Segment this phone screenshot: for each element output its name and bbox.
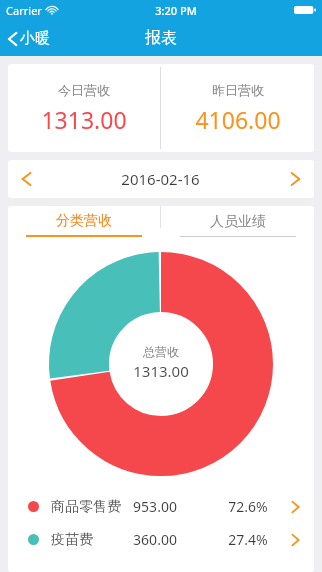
button[interactable]: 小暖 [0, 25, 60, 52]
button[interactable]: 昨日营收 [161, 64, 314, 152]
button[interactable]: 分类营收 [8, 206, 160, 240]
staticText: 今日营收 [58, 82, 110, 98]
button[interactable]: 疫苗费 [8, 523, 314, 556]
button[interactable]: Previous day [8, 160, 121, 198]
staticText: 4106.00 [195, 104, 281, 135]
staticText: 2016-02-16 [121, 169, 200, 189]
staticText: 1313.00 [41, 104, 127, 135]
staticText: 27.4% [228, 530, 268, 549]
staticText: 商品零售费 [51, 498, 121, 516]
button[interactable]: Next day [200, 160, 314, 198]
staticText: 人员业绩 [210, 213, 266, 231]
button[interactable]: 今日营收 [8, 64, 160, 152]
staticText: 报表 [145, 28, 177, 48]
staticText: Carrier [6, 3, 42, 18]
staticText: 1313.00 [133, 361, 189, 381]
staticText: 疫苗费 [51, 531, 93, 549]
button[interactable]: 商品零售费 [8, 490, 314, 523]
staticText: 953.00 [133, 497, 177, 516]
staticText: 分类营收 [56, 212, 112, 230]
staticText: 小暖 [20, 29, 50, 48]
staticText: 3:20 PM [155, 3, 197, 18]
button[interactable]: 人员业绩 [161, 206, 314, 240]
staticText: 总营收 [143, 344, 179, 359]
staticText: 昨日营收 [212, 82, 264, 98]
staticText: 72.6% [228, 497, 268, 516]
staticText: 360.00 [133, 530, 177, 549]
